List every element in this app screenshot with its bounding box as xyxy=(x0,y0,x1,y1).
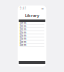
staticText: Item xyxy=(20,21,26,25)
staticText: Item xyxy=(20,43,26,47)
staticText: Library xyxy=(25,13,39,18)
staticText: Item xyxy=(20,40,26,44)
button[interactable]: Item xyxy=(18,31,46,34)
button[interactable]: Item xyxy=(18,44,46,47)
button[interactable]: Item xyxy=(18,25,46,28)
staticText: ▬ xyxy=(41,7,44,10)
button[interactable]: Item xyxy=(18,37,46,41)
staticText: Item xyxy=(20,37,26,40)
button[interactable]: Item xyxy=(18,41,46,44)
button[interactable]: Item xyxy=(18,28,46,31)
staticText: Item xyxy=(20,31,26,34)
staticText: Item xyxy=(20,25,26,28)
staticText: Item xyxy=(20,34,26,37)
button[interactable]: Item xyxy=(18,34,46,37)
staticText: Item xyxy=(20,28,26,31)
button[interactable] xyxy=(18,61,46,64)
button[interactable]: Item xyxy=(18,22,46,25)
staticText: 9:41 xyxy=(20,7,27,10)
